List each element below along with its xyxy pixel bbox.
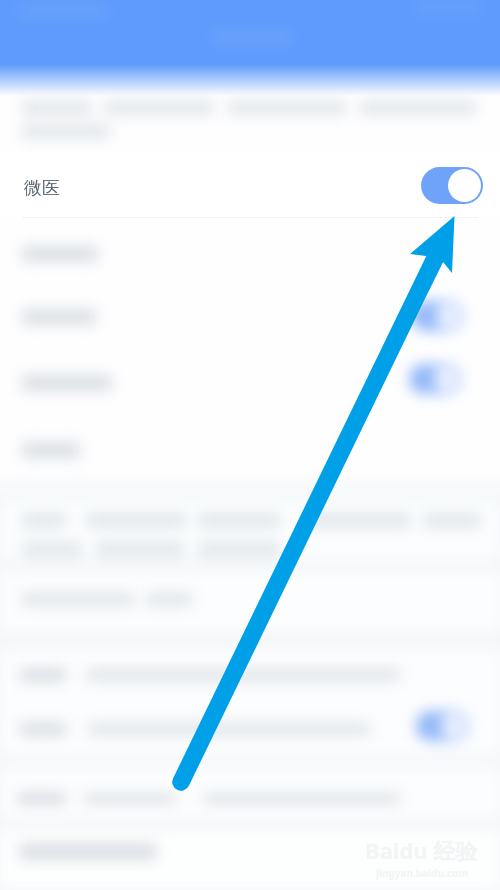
staticText: jingyan.baidu.com [376,866,468,880]
staticText: Baidu 经验 [365,835,478,865]
staticText: 微医 [24,177,60,200]
button[interactable]: Toggle 微医 on [421,167,483,204]
button[interactable]: 微医 [0,152,500,218]
